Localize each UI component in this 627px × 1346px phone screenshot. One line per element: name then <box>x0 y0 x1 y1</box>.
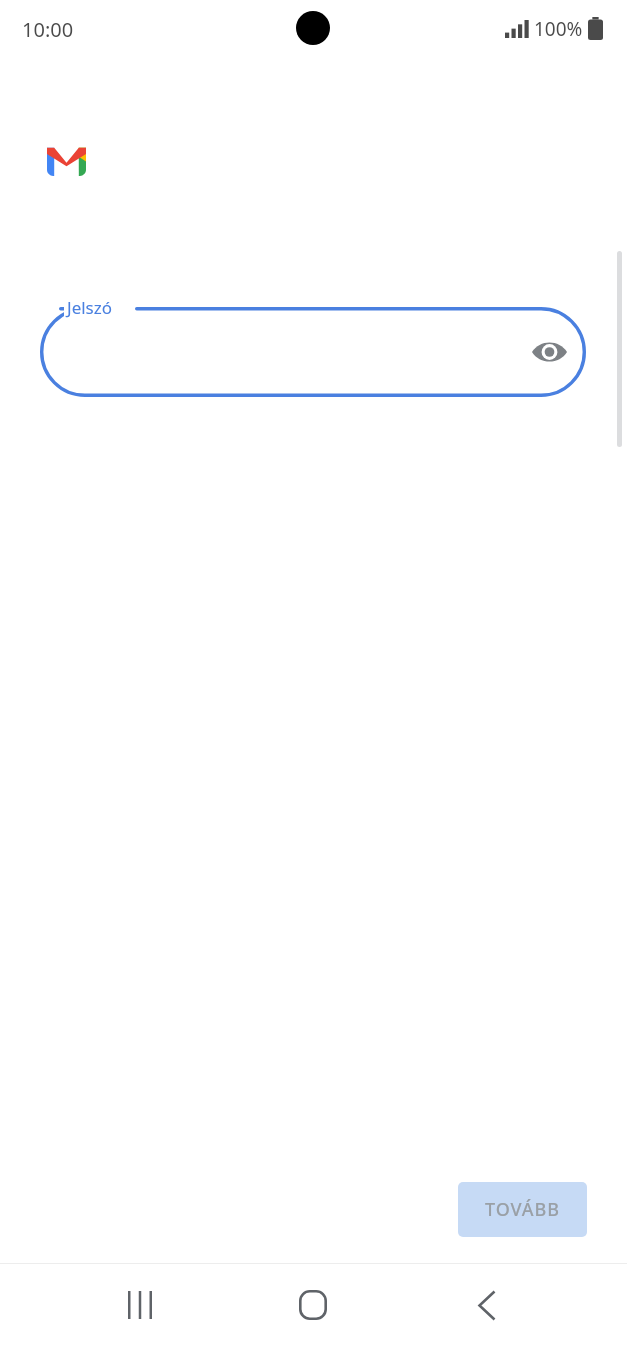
button[interactable]: Show password <box>525 328 573 376</box>
button[interactable]: TOVÁBB <box>458 1182 587 1237</box>
staticText: TOVÁBB <box>485 1197 560 1222</box>
button[interactable]: Show password <box>40 307 586 397</box>
staticText: Jelszó <box>67 296 113 319</box>
button[interactable]: Back <box>453 1271 521 1339</box>
staticText: 10:00 <box>22 16 74 43</box>
button[interactable]: Home <box>279 1271 347 1339</box>
button[interactable]: Recent apps <box>106 1271 174 1339</box>
other: Gmail <box>47 147 86 176</box>
staticText: 100% <box>534 16 583 42</box>
